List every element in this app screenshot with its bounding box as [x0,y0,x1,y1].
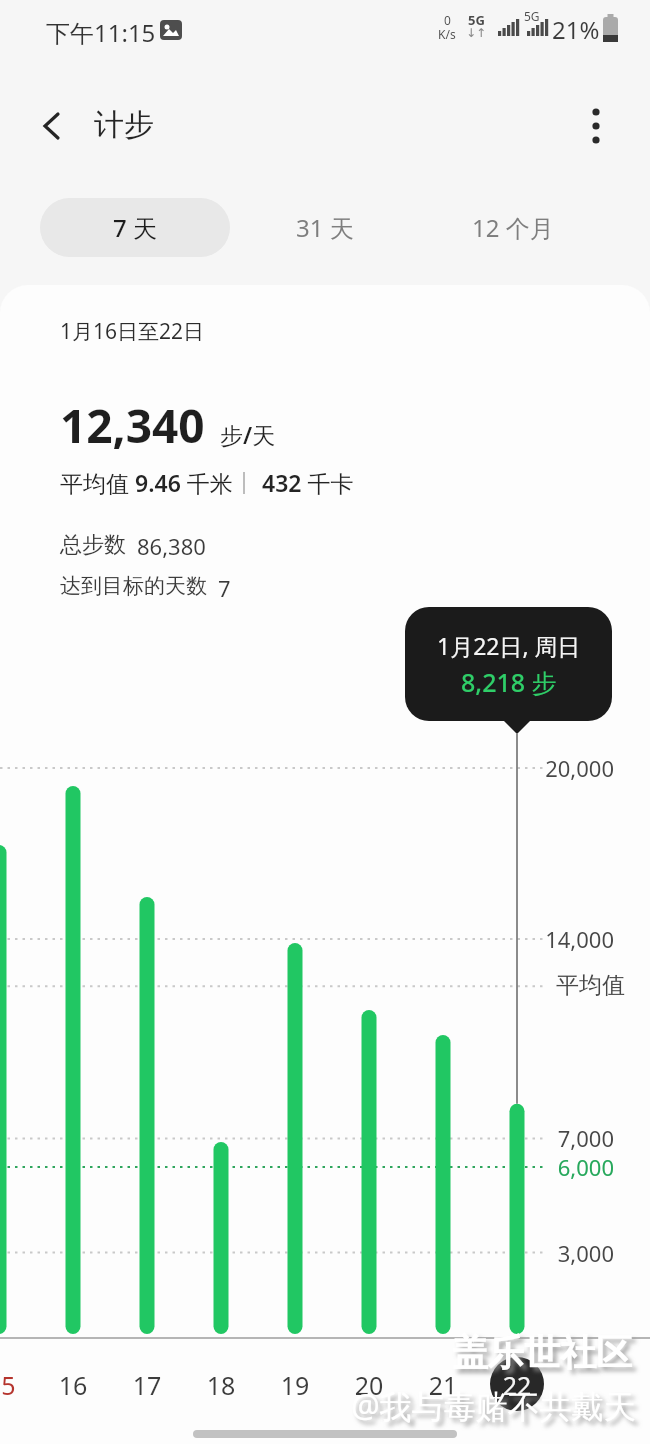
staticText: 5G [524,8,540,24]
staticText: 7 天 [113,211,157,244]
staticText: 0 [444,12,451,28]
staticText: 16 [36,1368,110,1402]
staticText: 5G [468,11,485,29]
button[interactable]: 1月22日, 周日 [405,607,612,721]
button[interactable]: 12 个月 [428,198,598,257]
staticText: 平均值 9.46 千米 [60,467,233,498]
button[interactable] [110,755,184,1415]
staticText: 1月22日, 周日 [437,630,581,661]
staticText: 达到目标的天数 [60,573,207,599]
staticText: 12 个月 [472,211,554,244]
button[interactable] [406,755,480,1415]
staticText: 7,000 [524,1123,614,1153]
staticText: 15 [0,1368,16,1402]
button[interactable] [480,755,554,1415]
button[interactable] [332,755,406,1415]
staticText: 8,218 步 [461,665,557,699]
button[interactable] [184,755,258,1415]
staticText: 7 [218,573,231,603]
staticText: 3,000 [524,1238,614,1268]
button[interactable] [258,755,332,1415]
staticText: @我与毒赌不共戴天 [351,1384,636,1428]
button[interactable] [30,104,74,148]
button[interactable]: 7 天 [40,198,230,257]
staticText: 432 千卡 [262,467,354,498]
staticText: 17 [110,1368,184,1402]
staticText: 31 天 [296,211,354,244]
staticText: 22 [480,1368,554,1402]
staticText: 14,000 [524,924,614,954]
staticText: 86,380 [137,531,206,561]
staticText: 总步数 [60,531,126,559]
staticText: 6,000 [524,1152,614,1182]
staticText: 12,340 [60,394,205,457]
staticText: 20,000 [524,753,614,783]
staticText: 步/天 [220,419,276,450]
staticText: 计步 [94,106,154,144]
staticText: 20 [332,1368,406,1402]
staticText: ↓↑ [466,26,487,40]
staticText: K/s [438,26,456,42]
staticText: 下午11:15 [46,16,156,49]
staticText: 1月16日至22日 [60,317,205,346]
button[interactable] [574,104,618,148]
staticText: 平均值 [556,971,625,1000]
button[interactable] [36,755,110,1415]
button[interactable]: 31 天 [250,198,400,257]
staticText: 18 [184,1368,258,1402]
staticText: 21 [406,1368,480,1402]
staticText: 21% [552,13,600,46]
staticText: 盖乐世社区 [452,1330,632,1375]
staticText: 19 [258,1368,332,1402]
